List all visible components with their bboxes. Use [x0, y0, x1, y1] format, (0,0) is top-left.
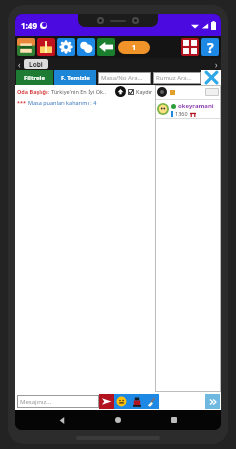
staticText: › [215, 59, 218, 70]
staticText: 1360 [175, 110, 188, 117]
button[interactable]: Profile [17, 38, 35, 56]
staticText: Rumuz Ara... [156, 74, 192, 82]
button[interactable]: Settings [57, 38, 75, 56]
staticText: Kaydır [136, 88, 153, 95]
button[interactable]: Recents [165, 411, 183, 429]
button[interactable]: Send [99, 394, 114, 409]
button[interactable]: Back [97, 38, 115, 56]
staticText: 1:49 [21, 20, 37, 31]
staticText: Mesajınız... [20, 398, 52, 406]
staticText: ‹ [18, 59, 21, 70]
button[interactable]: Scroll up [115, 86, 126, 97]
button[interactable]: Help [201, 38, 219, 56]
staticText: : Türkiye'nin En İyi Ok.. [48, 88, 106, 95]
button[interactable]: Rumuz Ara... [153, 72, 201, 84]
staticText: Masa/No Ara... [101, 74, 143, 82]
button[interactable]: Expand [205, 394, 220, 409]
button[interactable]: Back [53, 411, 71, 429]
staticText: F. Temizle [61, 74, 90, 82]
staticText: Filtrele [24, 74, 45, 82]
staticText: Oda Başlığı [17, 88, 48, 95]
button[interactable]: Masa/No Ara... [98, 72, 151, 84]
staticText: ? [207, 38, 214, 56]
staticText: Masa puanları kaharımı : 4 [28, 99, 97, 106]
button[interactable]: Close [201, 70, 221, 85]
staticText: okeyramani [178, 102, 214, 110]
button[interactable]: okeyramani [155, 100, 221, 118]
button[interactable]: Mesajınız... [17, 395, 99, 408]
button[interactable]: Filtrele [16, 70, 53, 85]
button[interactable] [155, 85, 221, 99]
button[interactable]: 1 [118, 41, 150, 54]
button[interactable]: Emoji [114, 394, 129, 409]
button[interactable]: Rooms [77, 38, 95, 56]
button[interactable]: Kaydır [128, 88, 153, 95]
button[interactable]: Gifts [129, 394, 144, 409]
button[interactable]: Scoreboard [181, 38, 199, 56]
button[interactable]: Home [109, 411, 127, 429]
button[interactable]: Clear [144, 394, 159, 409]
button[interactable]: Lobi [24, 59, 48, 69]
button[interactable]: F. Temizle [54, 70, 96, 85]
button[interactable]: Gifts [37, 38, 55, 56]
staticText: Lobi [29, 60, 43, 69]
button[interactable]: Scroll left [15, 58, 24, 70]
button[interactable]: Scroll right [212, 58, 221, 70]
staticText: 1 [132, 43, 137, 53]
staticText: *** [17, 99, 28, 106]
